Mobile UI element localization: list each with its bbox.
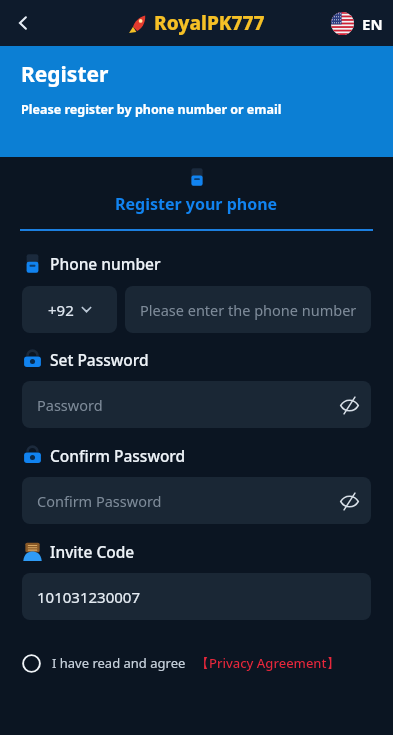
button[interactable]: Back [6,6,40,40]
button[interactable]: 【Privacy Agreement】 [196,654,340,672]
staticText: Register [21,60,109,89]
staticText: Set Password [50,349,149,370]
staticText: Confirm Password [37,491,327,511]
staticText: Password [37,395,327,415]
button[interactable]: +92 [22,286,117,333]
button[interactable]: Register your phone [105,167,288,215]
staticText: Invite Code [50,541,135,562]
staticText: 【Privacy Agreement】 [196,654,340,672]
staticText: Please register by phone number or email [21,101,282,118]
button[interactable]: Show password [327,479,371,523]
staticText: 101031230007 [37,587,140,607]
button[interactable]: Please enter the phone number [125,286,371,333]
staticText: RoyalPK777 [154,10,265,36]
button[interactable]: EN [331,12,383,35]
button[interactable]: Password [22,381,371,428]
button[interactable]: Confirm Password [22,477,371,524]
staticText: Phone number [50,253,161,274]
button[interactable]: Agree to privacy policy [14,646,48,680]
staticText: Register your phone [115,193,278,215]
staticText: Please enter the phone number [140,300,357,320]
staticText: I have read and agree [52,654,186,672]
button[interactable]: 101031230007 [22,573,371,620]
staticText: +92 [48,300,74,320]
staticText: EN [362,14,383,34]
staticText: Confirm Password [50,445,186,466]
button[interactable]: Show password [327,383,371,427]
